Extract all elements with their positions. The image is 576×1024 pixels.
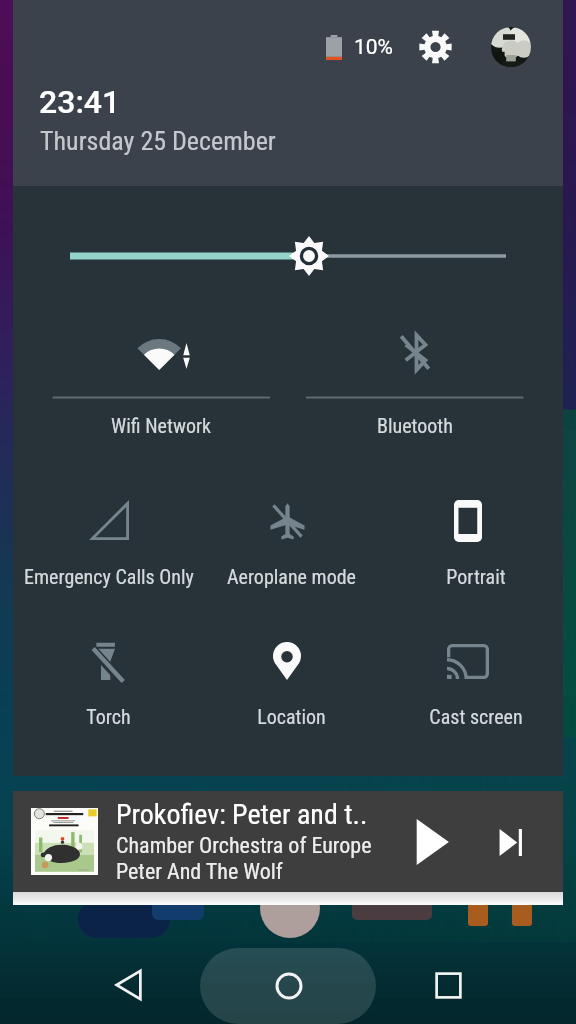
button[interactable]: Wifi Network — [13, 310, 288, 450]
button[interactable]: Settings — [409, 21, 461, 73]
button[interactable]: Prokofiev: Peter and t.. — [13, 791, 563, 892]
button[interactable]: Play — [401, 812, 461, 872]
staticText: Prokofiev: Peter and t.. — [116, 798, 368, 831]
staticText: 10% — [354, 35, 393, 60]
staticText: Torch — [86, 705, 131, 728]
staticText: Emergency Calls Only — [24, 565, 194, 588]
staticText: Aeroplane mode — [227, 565, 356, 588]
button[interactable]: Next track — [481, 812, 541, 872]
button[interactable]: Portrait — [380, 493, 563, 613]
staticText: Thursday 25 December — [40, 126, 276, 156]
button[interactable]: Location — [196, 633, 379, 753]
button[interactable]: Cast screen — [380, 633, 563, 753]
staticText: Chamber Orchestra of Europe — [116, 833, 372, 859]
button[interactable]: Recent apps — [410, 947, 486, 1023]
button[interactable]: Emergency Calls Only — [13, 493, 196, 613]
staticText: Bluetooth — [377, 414, 453, 437]
button[interactable]: Back — [90, 947, 166, 1023]
staticText: Wifi Network — [111, 414, 212, 437]
button[interactable]: 10% — [322, 24, 397, 70]
button[interactable]: Bluetooth — [288, 310, 563, 450]
staticText: Cast screen — [429, 705, 523, 728]
button[interactable]: Home — [250, 947, 327, 1024]
staticText: Location — [257, 705, 326, 728]
button[interactable]: Brightness — [43, 222, 533, 290]
staticText: Peter And The Wolf — [116, 859, 283, 885]
staticText: Portrait — [446, 565, 506, 588]
button[interactable]: User profile — [491, 27, 531, 67]
button[interactable]: Torch — [13, 633, 196, 753]
button[interactable]: Aeroplane mode — [196, 493, 379, 613]
staticText: 23:41 — [39, 83, 121, 121]
